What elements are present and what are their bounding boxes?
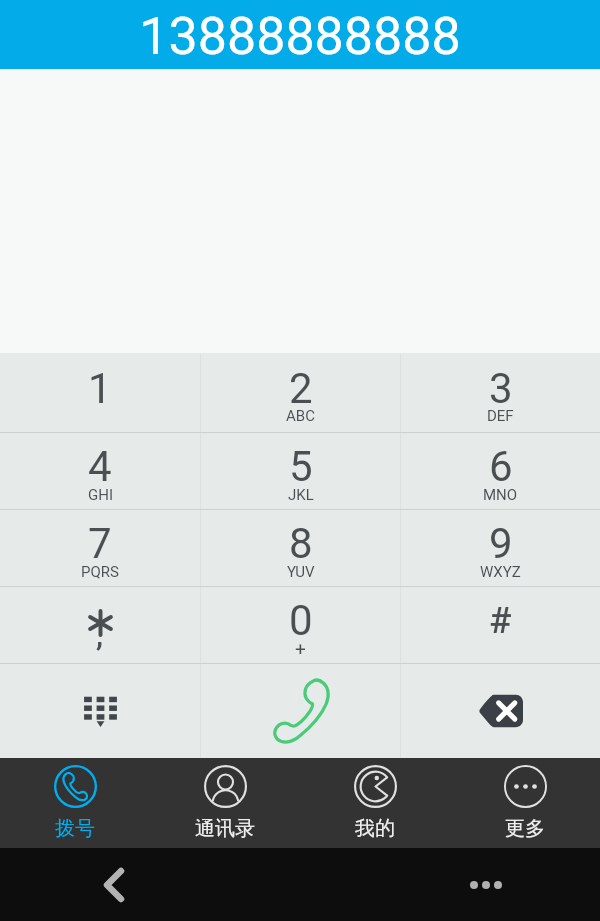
staticText: 6	[489, 442, 513, 491]
staticText: 拨号	[55, 816, 95, 841]
button[interactable]: 7	[0, 510, 200, 586]
staticText: 1	[88, 364, 112, 413]
staticText: +	[295, 637, 306, 659]
button[interactable]: star	[0, 587, 200, 663]
staticText: PQRS	[81, 563, 119, 581]
button[interactable]: 拨号	[0, 758, 150, 848]
staticText: 2	[289, 364, 313, 413]
staticText: 更多	[505, 816, 545, 841]
staticText: DEF	[487, 407, 514, 425]
button[interactable]: 4	[0, 433, 200, 509]
button[interactable]: 1	[0, 353, 200, 432]
button[interactable]: Back	[86, 857, 142, 913]
other: star	[88, 611, 113, 635]
staticText: GHI	[88, 486, 113, 504]
button[interactable]: 3	[401, 353, 600, 432]
button[interactable]: Recent apps	[470, 863, 526, 907]
staticText: JKL	[288, 486, 314, 504]
button[interactable]: 0	[201, 587, 400, 663]
staticText: 4	[88, 442, 112, 491]
button[interactable]: Delete	[401, 664, 600, 758]
staticText: 通讯录	[195, 816, 255, 841]
button[interactable]: 9	[401, 510, 600, 586]
button[interactable]: #	[401, 587, 600, 663]
button[interactable]: Call	[201, 664, 400, 758]
staticText: 5	[289, 442, 313, 491]
staticText: 7	[88, 519, 112, 568]
staticText: ,	[96, 616, 104, 654]
staticText: 3	[489, 364, 513, 413]
staticText: 0	[289, 596, 313, 645]
button[interactable]: 5	[201, 433, 400, 509]
button[interactable]: 更多	[450, 758, 600, 848]
staticText: WXYZ	[480, 563, 521, 581]
staticText: YUV	[287, 563, 315, 581]
staticText: 13888888888	[139, 6, 461, 67]
staticText: #	[489, 599, 512, 642]
staticText: 我的	[355, 816, 395, 841]
button[interactable]: 2	[201, 353, 400, 432]
staticText: 8	[289, 519, 313, 568]
staticText: ABC	[286, 407, 315, 425]
button[interactable]: 6	[401, 433, 600, 509]
button[interactable]: 我的	[300, 758, 450, 848]
button[interactable]: 8	[201, 510, 400, 586]
staticText: MNO	[483, 486, 518, 504]
button[interactable]: Hide keypad	[0, 664, 200, 758]
staticText: 9	[489, 519, 513, 568]
button[interactable]: 通讯录	[150, 758, 300, 848]
